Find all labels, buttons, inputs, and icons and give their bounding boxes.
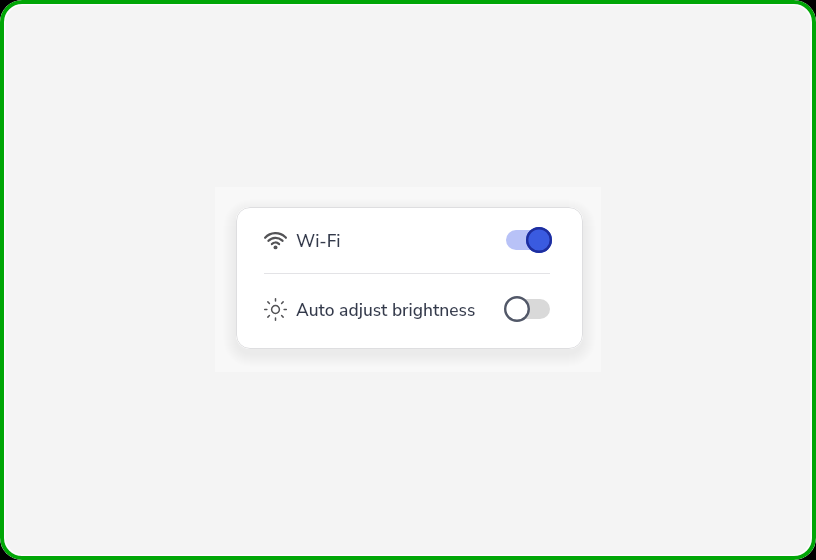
- button[interactable]: Auto adjust brightness: [236, 279, 583, 339]
- button[interactable]: Turn on: [506, 295, 550, 323]
- button[interactable]: Wi-Fi: [236, 210, 583, 270]
- staticText: Wi-Fi: [296, 230, 341, 254]
- button[interactable]: Turn off: [506, 226, 550, 254]
- staticText: Auto adjust brightness: [296, 299, 476, 323]
